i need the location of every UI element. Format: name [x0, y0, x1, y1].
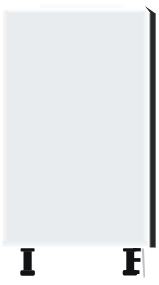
button[interactable]: Product photo of a white cabinet — [0, 0, 159, 285]
